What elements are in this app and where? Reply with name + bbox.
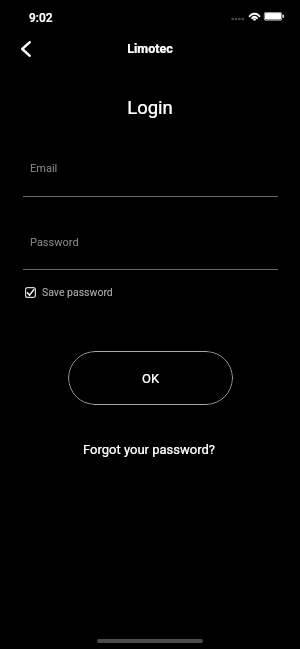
staticText: OK [142, 371, 160, 386]
staticText: Login [0, 97, 300, 119]
button[interactable]: Back [13, 36, 38, 61]
staticText: Password [30, 236, 79, 249]
button[interactable]: Forgot your password? [79, 438, 219, 461]
button[interactable]: Email [23, 152, 278, 198]
button[interactable]: OK [68, 351, 233, 405]
button[interactable]: Save password [25, 286, 113, 298]
staticText: Limotec [0, 41, 300, 56]
staticText: 9:02 [29, 11, 53, 25]
staticText: Save password [42, 286, 113, 298]
staticText: Forgot your password? [83, 442, 215, 457]
button[interactable]: Password [23, 226, 278, 271]
staticText: Email [30, 162, 58, 175]
